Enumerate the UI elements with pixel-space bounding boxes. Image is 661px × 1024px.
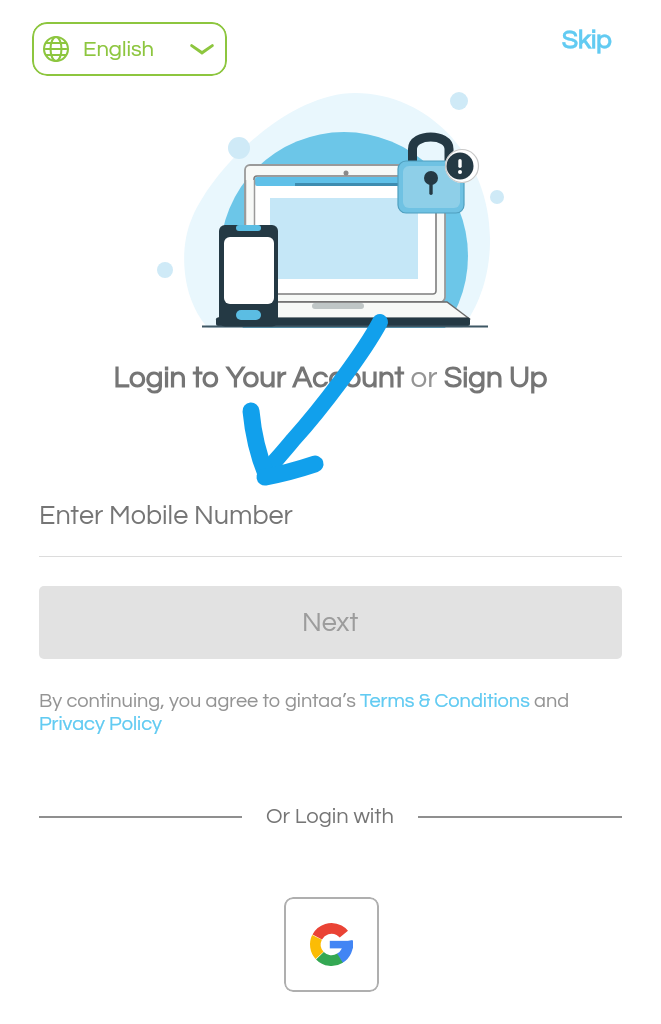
staticText: Enter Mobile Number [39,502,293,530]
staticText: English [83,38,154,61]
staticText: By continuing, you agree to gintaa’s Ter… [39,691,599,735]
staticText: Next [302,609,359,637]
button[interactable]: English [32,22,227,76]
staticText: Login to Your Account or Sign Up [0,363,661,394]
staticText: Or Login with [266,805,394,828]
staticText: Skip [562,27,612,54]
button[interactable]: Sign in with Google [284,897,379,992]
button[interactable]: Next [39,586,622,659]
button[interactable]: Skip [556,23,618,58]
